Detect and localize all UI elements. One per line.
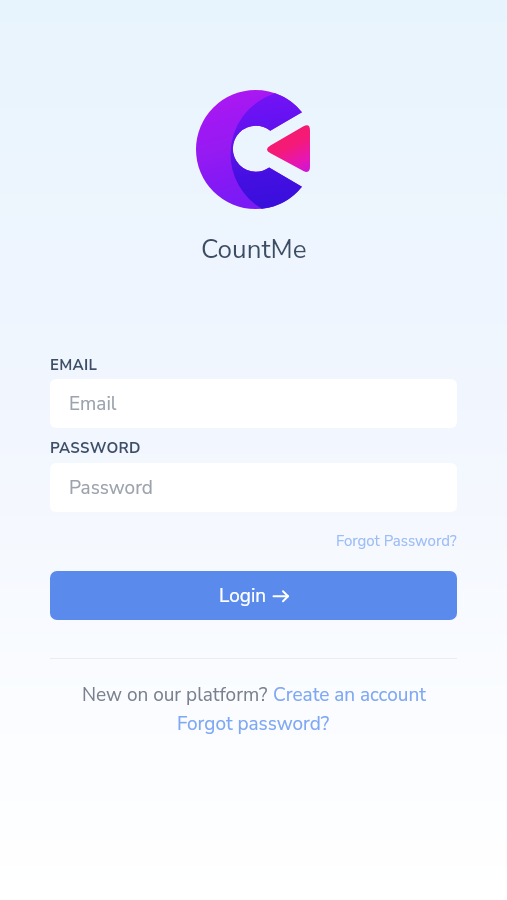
staticText: CountMe (201, 232, 307, 267)
button[interactable]: Login (50, 571, 457, 620)
button[interactable]: Password (50, 463, 457, 512)
button[interactable]: Create an account (273, 682, 426, 708)
button[interactable]: Email (50, 379, 457, 428)
staticText: Create an account (273, 682, 426, 708)
staticText: Password (69, 475, 153, 501)
staticText: New on our platform? (82, 682, 273, 708)
button[interactable]: Forgot password? (177, 711, 330, 737)
button[interactable]: Forgot Password? (336, 531, 457, 551)
staticText: Forgot Password? (336, 531, 457, 551)
staticText: EMAIL (50, 355, 98, 375)
staticText: Email (69, 391, 117, 417)
staticText: PASSWORD (50, 438, 141, 458)
staticText: Login (219, 583, 267, 609)
staticText: Forgot password? (177, 711, 330, 737)
